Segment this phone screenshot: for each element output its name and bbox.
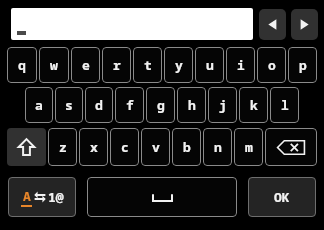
staticText: o	[268, 56, 276, 74]
button[interactable]: a	[25, 87, 53, 123]
staticText: x	[90, 138, 98, 156]
button[interactable]: m	[234, 128, 263, 166]
button[interactable]: c	[110, 128, 139, 166]
button[interactable]: q	[7, 47, 37, 83]
button[interactable]: h	[177, 87, 206, 123]
staticText: b	[183, 138, 191, 156]
staticText: k	[250, 96, 258, 114]
staticText: 1@	[48, 188, 64, 206]
button[interactable]: d	[85, 87, 113, 123]
button[interactable]: i	[226, 47, 255, 83]
staticText: m	[245, 138, 253, 156]
button[interactable]: Shift	[7, 128, 46, 166]
button[interactable]: p	[288, 47, 317, 83]
staticText: s	[65, 96, 73, 114]
staticText: h	[188, 96, 196, 114]
staticText: t	[144, 56, 152, 74]
staticText: c	[121, 138, 129, 156]
button[interactable]: y	[164, 47, 193, 83]
staticText: p	[299, 56, 307, 74]
staticText: z	[59, 138, 67, 156]
staticText: u	[206, 56, 214, 74]
staticText: r	[113, 56, 121, 74]
button[interactable]: u	[195, 47, 224, 83]
button[interactable]: Move cursor right	[291, 9, 318, 40]
staticText: f	[126, 96, 134, 114]
button[interactable]: o	[257, 47, 286, 83]
button[interactable]: b	[172, 128, 201, 166]
staticText: q	[18, 56, 26, 74]
button[interactable]	[11, 8, 253, 40]
staticText: e	[82, 56, 90, 74]
staticText: n	[214, 138, 222, 156]
button[interactable]: t	[133, 47, 162, 83]
button[interactable]: v	[141, 128, 170, 166]
staticText: d	[95, 96, 103, 114]
button[interactable]: e	[71, 47, 100, 83]
button[interactable]: OK	[248, 177, 316, 217]
button[interactable]: j	[208, 87, 237, 123]
button[interactable]: w	[39, 47, 69, 83]
staticText: i	[237, 56, 245, 74]
button[interactable]: l	[270, 87, 299, 123]
button[interactable]: n	[203, 128, 232, 166]
button[interactable]: Space	[87, 177, 237, 217]
button[interactable]: Backspace	[265, 128, 317, 166]
button[interactable]: r	[102, 47, 131, 83]
button[interactable]: g	[146, 87, 175, 123]
button[interactable]: f	[115, 87, 144, 123]
button[interactable]: x	[79, 128, 108, 166]
staticText: y	[175, 56, 183, 74]
staticText: g	[157, 96, 165, 114]
button[interactable]: z	[48, 128, 77, 166]
staticText: j	[219, 96, 227, 114]
button[interactable]: Switch letters and symbols	[8, 177, 76, 217]
staticText: w	[50, 56, 58, 74]
button[interactable]: k	[239, 87, 268, 123]
staticText: l	[281, 96, 289, 114]
staticText: a	[35, 96, 43, 114]
staticText: v	[152, 138, 160, 156]
button[interactable]: Move cursor left	[259, 9, 286, 40]
staticText: A	[23, 187, 31, 205]
button[interactable]: s	[55, 87, 83, 123]
staticText: OK	[274, 188, 290, 206]
